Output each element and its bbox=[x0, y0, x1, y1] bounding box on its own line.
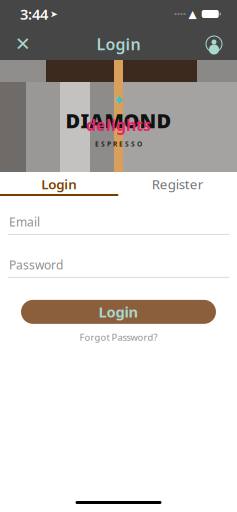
staticText: Login bbox=[41, 175, 77, 193]
staticText: ➤ bbox=[50, 9, 58, 19]
staticText: 3:44 bbox=[20, 4, 48, 24]
staticText: delights bbox=[86, 114, 151, 135]
button[interactable]: Account bbox=[197, 28, 231, 60]
staticText: ◆ bbox=[115, 94, 122, 104]
staticText: Forgot Password? bbox=[79, 331, 157, 343]
staticText: DIAMOND bbox=[65, 107, 171, 134]
staticText: Password bbox=[9, 257, 63, 273]
staticText: E S P R E S S O bbox=[95, 139, 142, 148]
button[interactable]: Close bbox=[6, 28, 40, 60]
button[interactable]: Login bbox=[0, 174, 118, 194]
button[interactable]: Forgot Password? bbox=[73, 324, 163, 346]
staticText: Login bbox=[96, 33, 140, 55]
staticText: Email bbox=[9, 214, 40, 230]
staticText: Register bbox=[152, 175, 204, 193]
staticText: ✕ bbox=[15, 33, 31, 55]
staticText: ▲ bbox=[188, 8, 196, 20]
staticText: Login bbox=[98, 302, 138, 322]
button[interactable]: Register bbox=[118, 174, 237, 194]
button[interactable]: Login bbox=[21, 300, 216, 324]
